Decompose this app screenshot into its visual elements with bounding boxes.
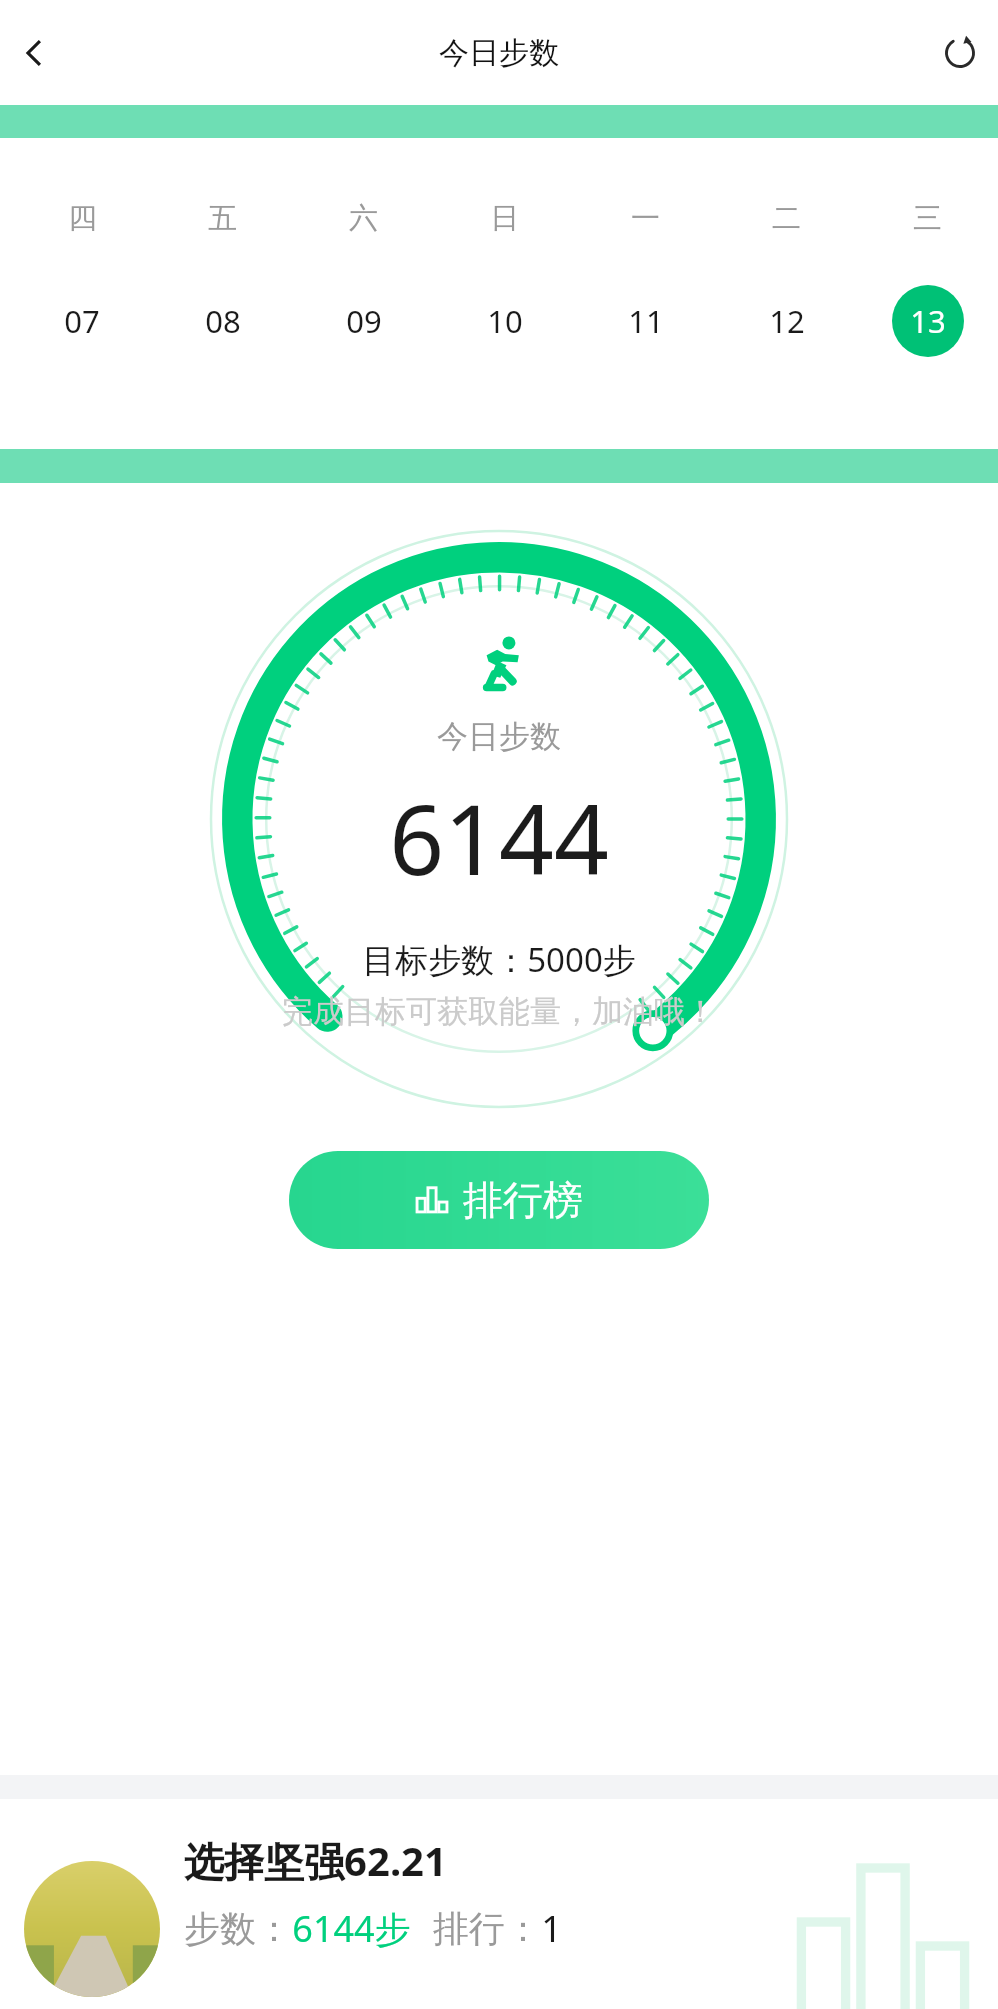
button[interactable]: 一 [575,138,716,357]
staticText: 11 [628,300,664,342]
staticText: 10 [487,300,523,342]
staticText: 6144步 [292,1904,411,1953]
staticText: 三 [913,200,942,237]
staticText: 六 [349,200,378,237]
button[interactable]: 选择坚强62.21 [0,1799,998,2009]
staticText: 步数： [184,1906,292,1951]
button[interactable]: 六 [293,138,434,357]
button[interactable]: Back [6,25,62,81]
button[interactable]: 五 [152,138,293,357]
staticText: 五 [208,200,237,237]
staticText: 今日步数 [439,34,559,72]
button[interactable]: 四 [12,138,152,357]
staticText: 选择坚强62.21 [184,1833,447,1888]
staticText: 1 [541,1904,562,1953]
button[interactable]: 三 [857,138,998,357]
staticText: 08 [205,300,241,342]
staticText: 09 [346,300,382,342]
button[interactable]: 日 [434,138,575,357]
button[interactable]: Refresh [932,25,988,81]
staticText: 排行： [433,1906,541,1951]
staticText: 13 [910,300,946,342]
button[interactable]: 二 [716,138,857,357]
staticText: 完成目标可获取能量，加油哦！ [282,992,716,1031]
staticText: 12 [769,300,805,342]
staticText: 一 [631,200,660,237]
button[interactable]: 排行榜 [289,1151,709,1249]
staticText: 排行榜 [463,1175,583,1225]
staticText: 四 [68,200,97,237]
staticText: 6144 [389,772,609,903]
staticText: 目标步数：5000步 [362,937,636,982]
staticText: 二 [772,200,801,237]
staticText: 日 [490,200,519,237]
staticText: 今日步数 [437,717,561,756]
staticText: 07 [64,300,100,342]
